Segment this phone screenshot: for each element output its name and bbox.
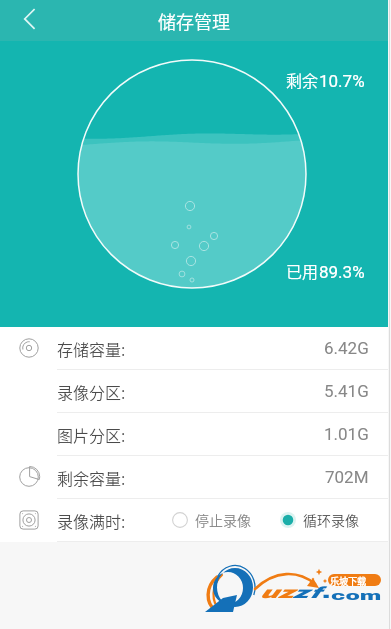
button[interactable]: 存储容量: xyxy=(0,327,388,370)
staticText: 10.7% xyxy=(319,71,365,91)
staticText: 乐坡下载 xyxy=(330,575,367,588)
staticText: 89.3% xyxy=(319,262,365,282)
staticText: 剩余容量: xyxy=(57,466,126,489)
button[interactable]: 循环录像 xyxy=(280,505,359,535)
staticText: uz xyxy=(259,584,293,601)
staticText: 剩余 xyxy=(286,68,319,91)
staticText: 5.41G xyxy=(324,381,369,401)
staticText: com xyxy=(331,588,382,603)
staticText: 已用 xyxy=(286,259,319,282)
staticText: 停止录像 xyxy=(195,510,251,530)
staticText: f xyxy=(309,584,320,601)
staticText: 录像分区: xyxy=(57,380,126,403)
staticText: 录像满时: xyxy=(57,509,126,532)
button[interactable]: 录像分区: xyxy=(0,370,388,413)
staticText: 储存管理 xyxy=(158,8,230,34)
staticText: 702M xyxy=(325,467,369,487)
staticText: 6.42G xyxy=(324,338,369,358)
button[interactable]: Back xyxy=(0,0,50,41)
button[interactable]: 剩余容量: xyxy=(0,456,388,499)
button[interactable]: 图片分区: xyxy=(0,413,388,456)
staticText: 存储容量: xyxy=(57,337,126,360)
staticText: 1.01G xyxy=(324,424,369,444)
staticText: . xyxy=(322,584,331,601)
button[interactable]: 停止录像 xyxy=(172,505,251,535)
staticText: 图片分区: xyxy=(57,423,126,446)
staticText: 循环录像 xyxy=(303,510,359,530)
staticText: z xyxy=(292,584,307,601)
